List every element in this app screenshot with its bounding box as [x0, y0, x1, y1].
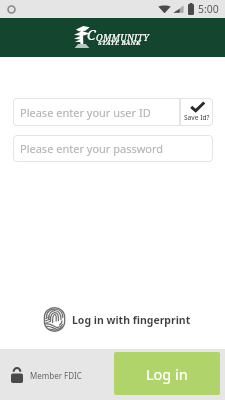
button[interactable]: Log in with fingerprint: [43, 307, 225, 332]
button[interactable]: Please enter your user ID: [13, 98, 180, 126]
staticText: Save Id?: [184, 113, 210, 122]
staticText: 5:00: [198, 2, 219, 16]
button[interactable]: Save Id?: [180, 98, 213, 126]
staticText: Member FDIC: [30, 370, 82, 381]
staticText: OMMUNITY: [96, 31, 150, 43]
staticText: STATE BANK: [98, 39, 141, 47]
button[interactable]: Member FDIC: [11, 367, 82, 383]
staticText: Log in with fingerprint: [72, 313, 191, 327]
staticText: Please enter your user ID: [20, 105, 151, 120]
staticText: C: [87, 25, 96, 44]
button[interactable]: Log in: [114, 352, 220, 395]
staticText: Log in: [146, 364, 188, 384]
staticText: Please enter your password: [20, 141, 164, 156]
button[interactable]: Please enter your password: [13, 135, 213, 162]
